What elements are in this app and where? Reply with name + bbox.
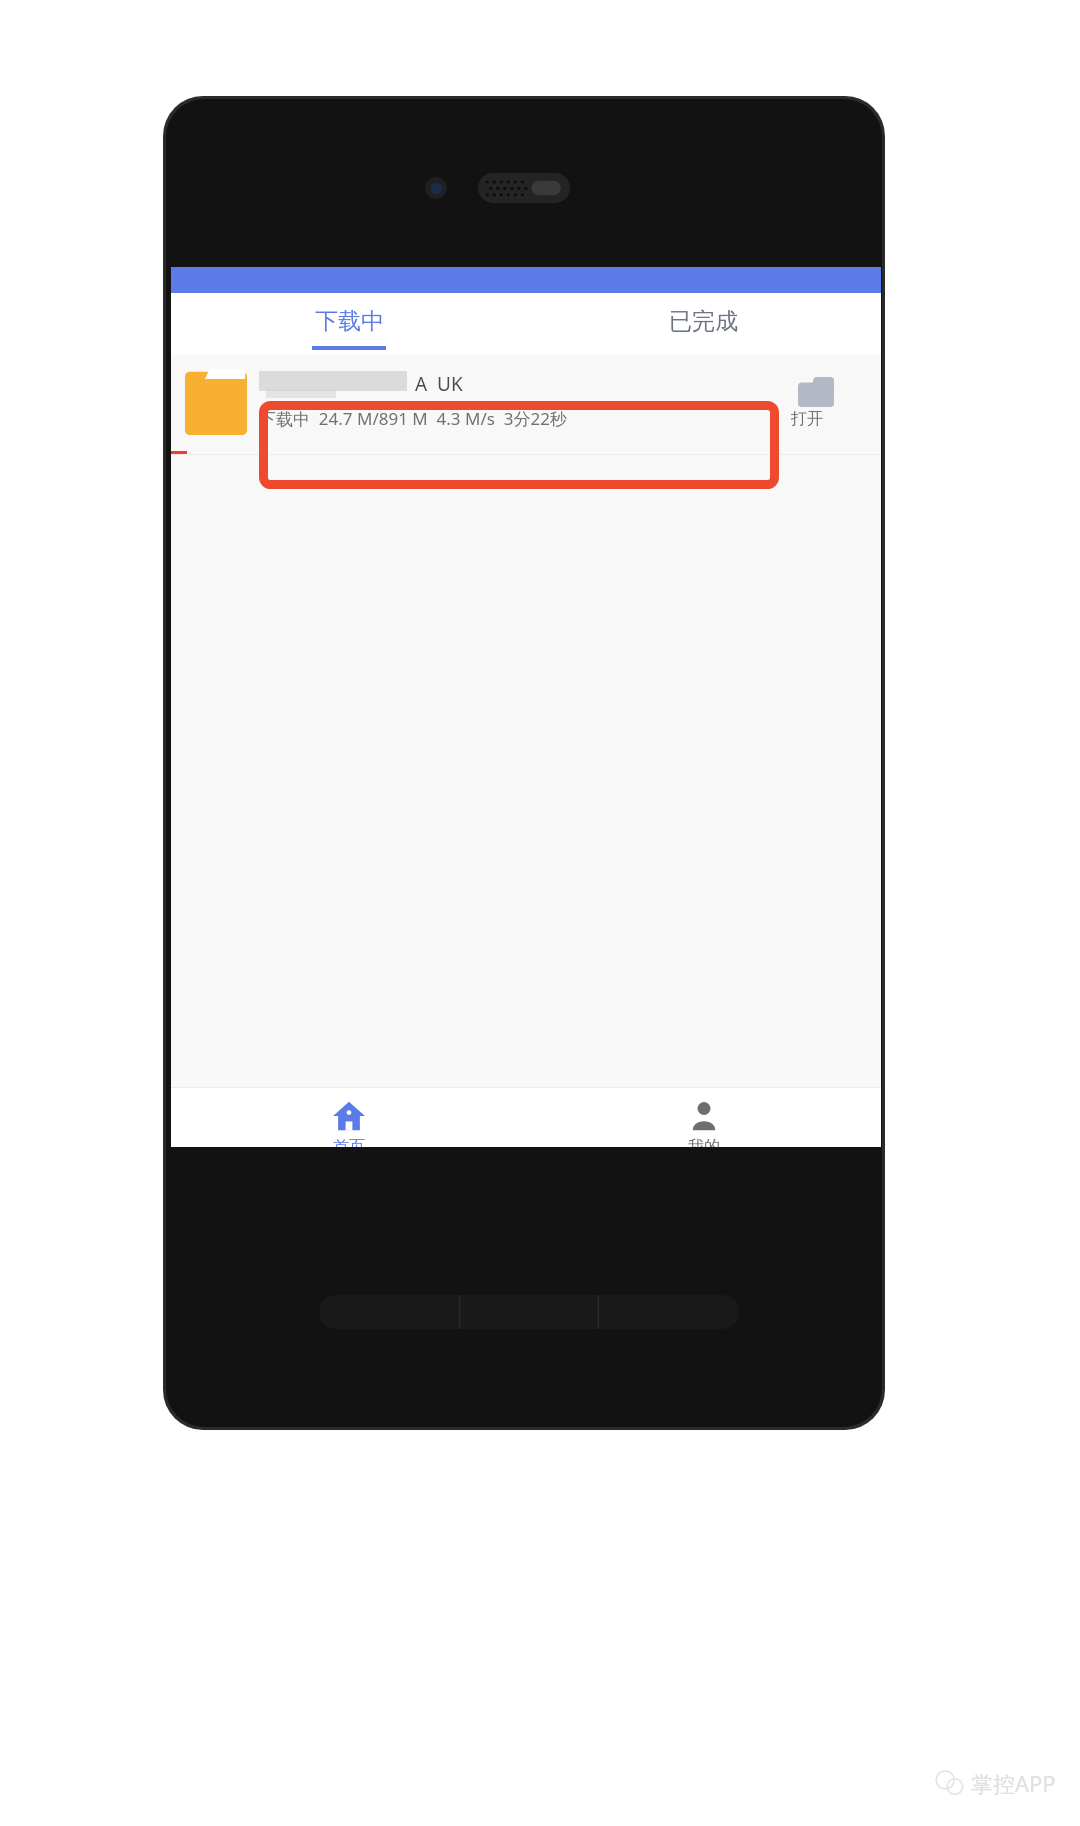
staticText: 掌控APP bbox=[971, 1768, 1056, 1798]
staticText: 我的 bbox=[688, 1137, 720, 1147]
button[interactable]: 已完成 bbox=[526, 293, 881, 355]
staticText: A UK bbox=[415, 371, 463, 397]
staticText: 首页 bbox=[333, 1137, 365, 1147]
button[interactable]: 下载中 bbox=[171, 293, 526, 355]
staticText: 下载中 bbox=[315, 307, 384, 336]
button[interactable]: 我的 bbox=[526, 1087, 881, 1147]
button[interactable]: Open folder bbox=[798, 377, 834, 407]
button[interactable]: A UK bbox=[171, 355, 881, 455]
staticText: 打开 bbox=[791, 409, 823, 429]
staticText: 下载中 24.7 M/891 M 4.3 M/s 3分22秒 bbox=[259, 407, 567, 430]
staticText: 已完成 bbox=[669, 307, 738, 336]
button[interactable]: 首页 bbox=[171, 1087, 526, 1147]
